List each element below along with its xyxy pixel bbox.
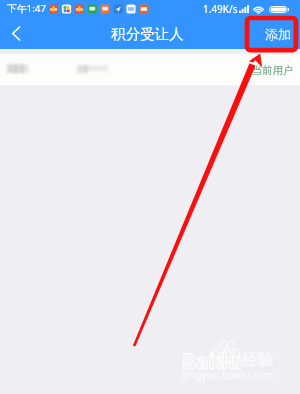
staticText: 添加 — [265, 26, 291, 42]
button[interactable]: 添加 — [255, 20, 300, 48]
staticText: 积分受让人 — [111, 25, 184, 43]
staticText: Baidu — [182, 347, 242, 376]
staticText: 1.49K/s — [203, 2, 238, 16]
staticText: 经验 — [242, 350, 273, 370]
button[interactable]: 当前用户 — [0, 54, 300, 85]
staticText: jingyan.baidu.com — [183, 368, 274, 382]
button[interactable]: 返回 — [0, 18, 31, 49]
staticText: 当前用户 — [252, 64, 294, 77]
staticText: 下午1:47 — [7, 2, 47, 15]
